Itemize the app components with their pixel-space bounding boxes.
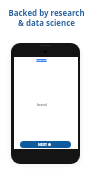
button[interactable]: NEXT: [20, 141, 71, 148]
staticText: brand: [37, 102, 47, 107]
staticText: START NOW: [36, 59, 47, 62]
staticText: & data science: [18, 18, 75, 29]
staticText: Backed by research: [8, 8, 85, 19]
staticText: NEXT: [38, 142, 47, 147]
button[interactable]: Brand badge: [36, 59, 47, 62]
